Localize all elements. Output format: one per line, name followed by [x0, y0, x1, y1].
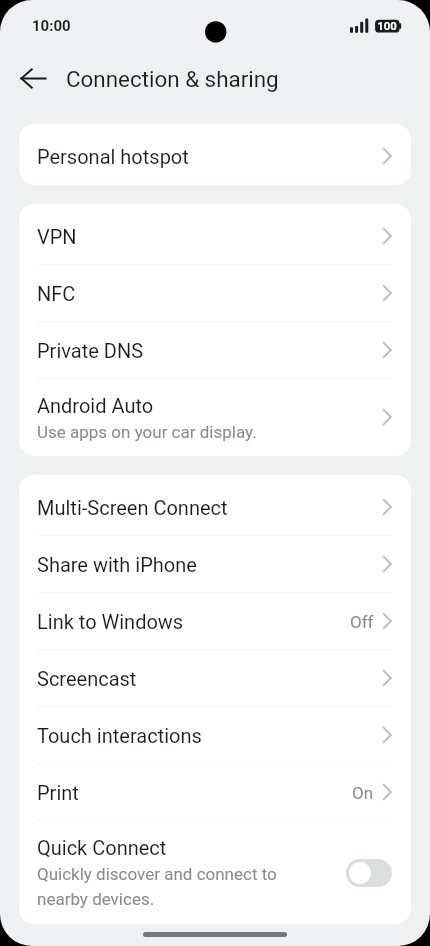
button[interactable]: VPN — [19, 208, 411, 265]
staticText: Use apps on your car display. — [37, 422, 257, 442]
staticText: Personal hotspot — [37, 145, 189, 168]
staticText: Link to Windows — [37, 610, 184, 633]
button[interactable]: Touch interactions — [19, 707, 411, 764]
staticText: 100 — [375, 19, 399, 32]
staticText: On — [352, 783, 374, 803]
staticText: 10:00 — [32, 17, 71, 35]
button[interactable]: Quick Connect toggle — [346, 859, 392, 887]
button[interactable]: Screencast — [19, 650, 411, 707]
staticText: Screencast — [37, 667, 137, 690]
staticText: Touch interactions — [37, 724, 202, 747]
button[interactable]: Android Auto — [19, 379, 411, 456]
staticText: Quickly discover and connect to nearby d… — [37, 864, 277, 909]
button[interactable]: Share with iPhone — [19, 536, 411, 593]
staticText: Off — [350, 612, 374, 632]
button[interactable]: Multi-Screen Connect — [19, 479, 411, 536]
staticText: Private DNS — [37, 339, 144, 362]
staticText: VPN — [37, 225, 77, 248]
staticText: Print — [37, 781, 79, 804]
button[interactable]: Back — [12, 63, 56, 107]
staticText: Quick Connect — [37, 836, 167, 859]
staticText: Multi-Screen Connect — [37, 496, 228, 519]
button[interactable]: Quick Connect — [19, 821, 411, 924]
staticText: Connection & sharing — [66, 66, 279, 92]
button[interactable]: Private DNS — [19, 322, 411, 379]
button[interactable]: Print — [19, 764, 411, 821]
staticText: Share with iPhone — [37, 553, 197, 576]
staticText: NFC — [37, 282, 76, 305]
button[interactable]: NFC — [19, 265, 411, 322]
staticText: Android Auto — [37, 394, 154, 417]
button[interactable]: Link to Windows — [19, 593, 411, 650]
button[interactable]: Personal hotspot — [19, 128, 411, 185]
